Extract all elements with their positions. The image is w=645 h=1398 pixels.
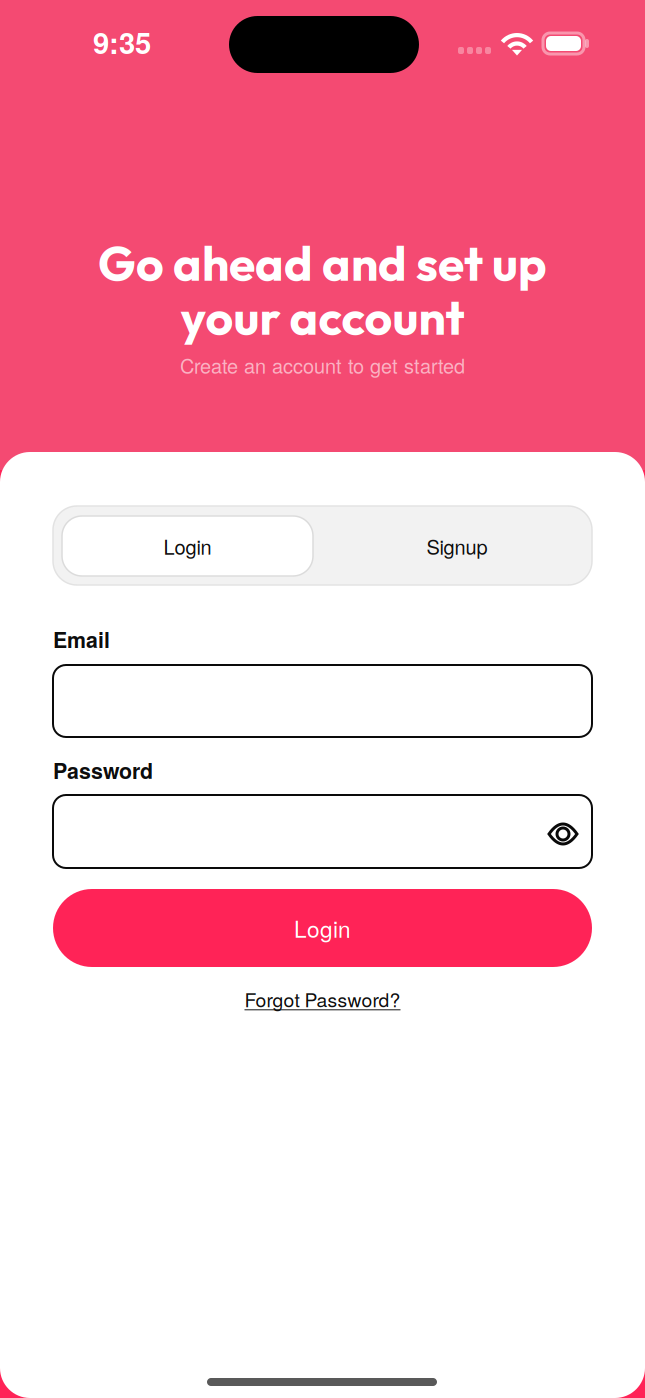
staticText: Signup [426,532,487,560]
button[interactable]: Signup [53,506,323,566]
staticText: Login [294,912,351,944]
staticText: Create an account to get started [180,351,465,379]
staticText: Password [53,755,153,785]
button[interactable]: Show password [531,802,595,866]
staticText: 9:35 [93,21,151,63]
button[interactable]: Login [53,889,592,967]
staticText: Forgot Password? [244,985,400,1013]
button[interactable]: Login [53,506,304,566]
staticText: Go ahead and set up [98,233,547,293]
button[interactable]: Forgot Password? [53,984,592,1014]
staticText: Login [163,532,211,560]
staticText: your account [180,287,464,347]
staticText: Email [53,624,110,654]
